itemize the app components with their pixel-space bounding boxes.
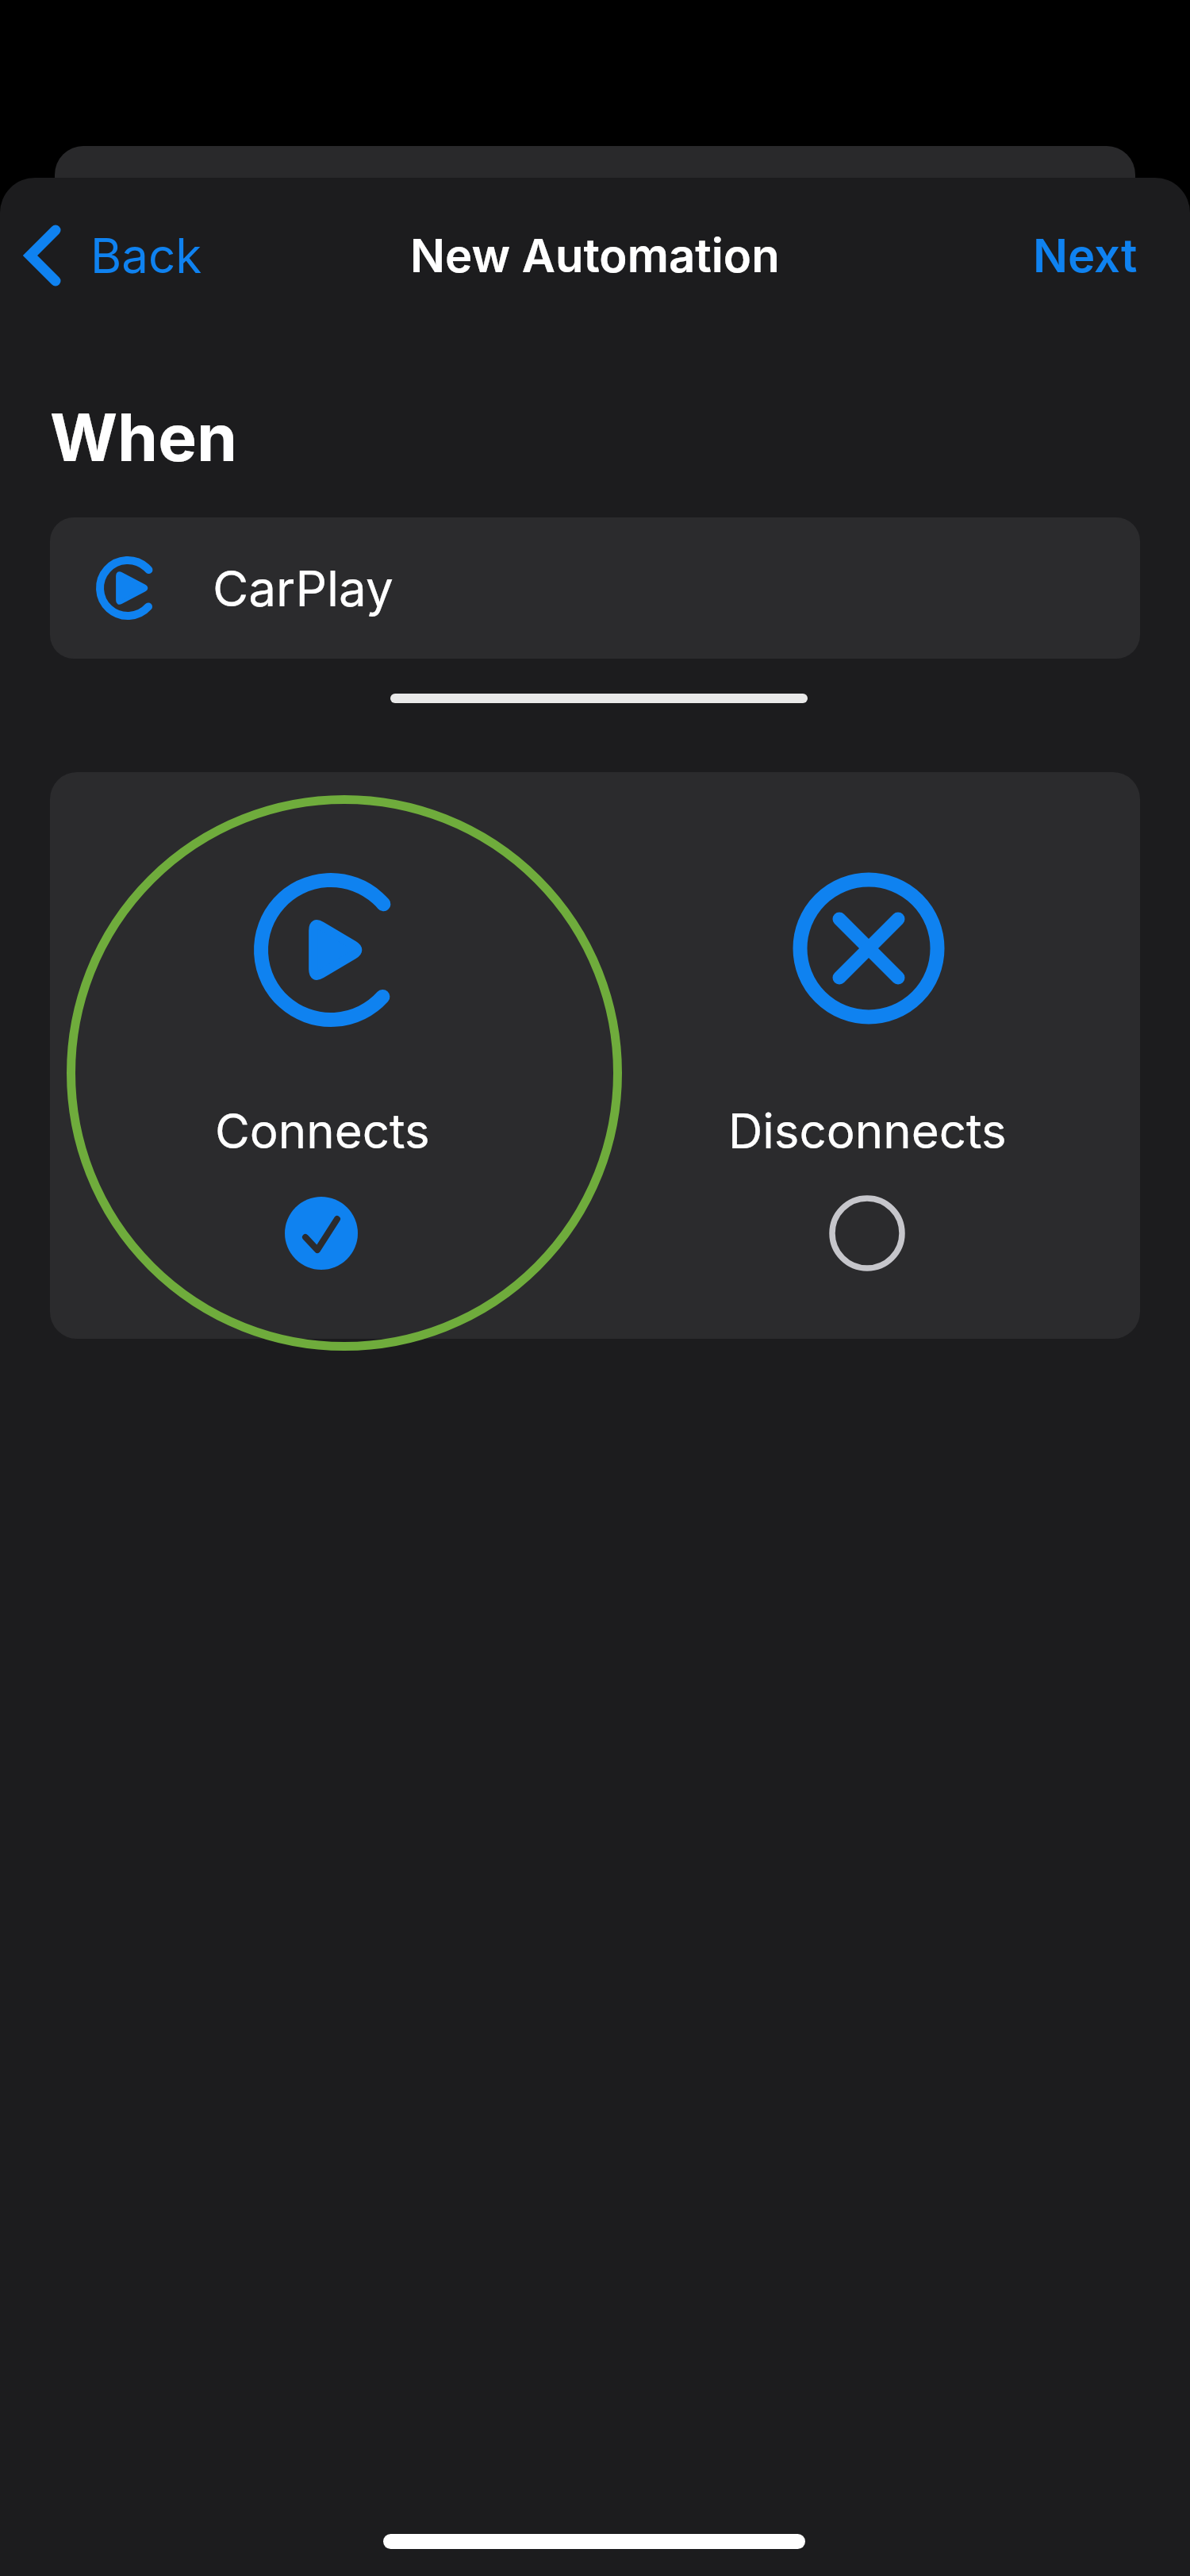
button[interactable]: CarPlay	[50, 517, 1140, 659]
staticText: When	[50, 398, 238, 477]
staticText: New Automation	[410, 228, 780, 283]
button[interactable]	[595, 772, 1140, 1339]
staticText: Next	[1033, 228, 1138, 283]
staticText: Back	[90, 227, 202, 285]
staticText: Disconnects	[728, 1102, 1007, 1160]
staticText: Connects	[215, 1102, 430, 1160]
button[interactable]: Back	[22, 224, 202, 287]
button[interactable]	[50, 772, 595, 1339]
button[interactable]: Next	[1085, 228, 1190, 283]
staticText: CarPlay	[213, 559, 393, 618]
